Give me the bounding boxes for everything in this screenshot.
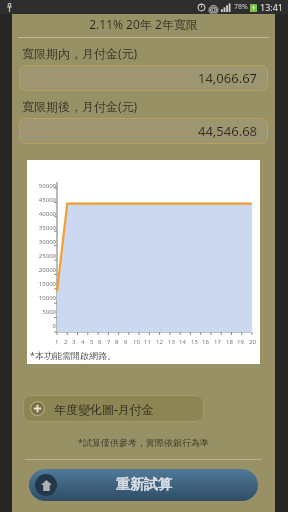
staticText: 20000 bbox=[28, 266, 56, 274]
staticText: 15000 bbox=[28, 280, 56, 288]
staticText: 年度變化圖-月付金 bbox=[54, 401, 154, 417]
staticText: 15 bbox=[191, 338, 198, 346]
staticText: 10000 bbox=[28, 294, 56, 302]
staticText: 35000 bbox=[28, 224, 56, 232]
button[interactable]: 重新試算 bbox=[29, 469, 258, 501]
staticText: 78% bbox=[234, 2, 248, 12]
button[interactable]: 44,546.68 bbox=[19, 118, 268, 144]
staticText: 14,066.67 bbox=[198, 69, 258, 87]
staticText: 重新試算 bbox=[116, 476, 172, 494]
staticText: 3 bbox=[72, 338, 76, 346]
staticText: 6 bbox=[98, 338, 102, 346]
staticText: 0 bbox=[28, 322, 56, 330]
staticText: 50000 bbox=[28, 182, 56, 190]
staticText: 2.11% 20年 2年寬限 bbox=[12, 16, 275, 32]
staticText: 40000 bbox=[28, 210, 56, 218]
staticText: 44,546.68 bbox=[198, 122, 258, 140]
staticText: 16 bbox=[202, 338, 209, 346]
staticText: 4 bbox=[81, 338, 85, 346]
staticText: 寬限期後，月付金(元) bbox=[22, 98, 138, 114]
staticText: 19 bbox=[237, 338, 244, 346]
staticText: 2 bbox=[64, 338, 68, 346]
staticText: 12 bbox=[156, 338, 163, 346]
staticText: 5000 bbox=[28, 308, 56, 316]
staticText: 30000 bbox=[28, 238, 56, 246]
staticText: 7 bbox=[107, 338, 111, 346]
staticText: 5 bbox=[90, 338, 94, 346]
staticText: 14 bbox=[179, 338, 186, 346]
staticText: 13 bbox=[168, 338, 175, 346]
staticText: 17 bbox=[214, 338, 221, 346]
button[interactable]: 14,066.67 bbox=[19, 65, 268, 91]
staticText: 1 bbox=[55, 338, 59, 346]
staticText: *本功能需開啟網路。 bbox=[30, 349, 116, 361]
staticText: 11 bbox=[144, 338, 151, 346]
staticText: 寬限期內，月付金(元) bbox=[22, 45, 138, 61]
staticText: 8 bbox=[115, 338, 119, 346]
staticText: 13:41 bbox=[260, 1, 284, 13]
staticText: *試算僅供參考，實際依銀行為準 bbox=[12, 436, 275, 448]
staticText: 9 bbox=[124, 338, 128, 346]
button[interactable]: 年度變化圖-月付金 bbox=[23, 395, 204, 422]
staticText: 25000 bbox=[28, 252, 56, 260]
staticText: 10 bbox=[133, 338, 140, 346]
staticText: 45000 bbox=[28, 196, 56, 204]
staticText: 18 bbox=[226, 338, 233, 346]
staticText: 20 bbox=[249, 338, 256, 346]
